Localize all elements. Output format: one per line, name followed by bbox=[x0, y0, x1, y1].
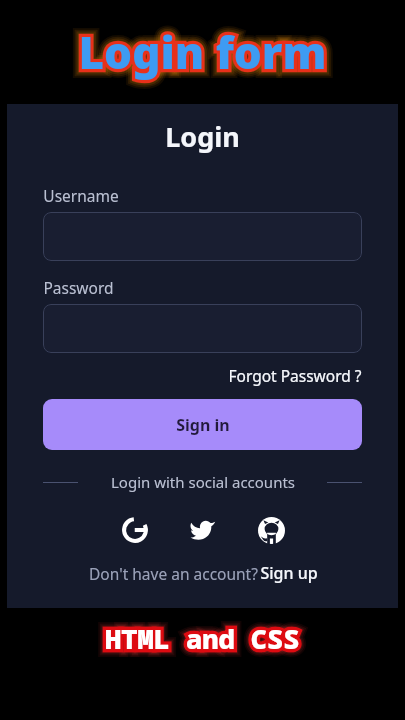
button[interactable] bbox=[43, 304, 362, 353]
staticText: Forgot Password ? bbox=[228, 365, 362, 386]
button[interactable] bbox=[43, 212, 362, 261]
staticText: Password bbox=[43, 277, 114, 298]
button[interactable]: Sign in bbox=[43, 399, 362, 450]
staticText: Sign up bbox=[260, 562, 318, 584]
button[interactable]: Sign in with Twitter bbox=[179, 506, 227, 554]
button[interactable]: Sign up bbox=[260, 562, 318, 584]
staticText: Login with social accounts bbox=[111, 472, 295, 492]
staticText: Don't have an account? bbox=[87, 563, 260, 584]
button[interactable]: Sign in with Google bbox=[111, 506, 159, 554]
staticText: Sign in bbox=[176, 414, 230, 436]
staticText: Login bbox=[165, 118, 240, 155]
button[interactable]: Sign in with GitHub bbox=[247, 506, 295, 554]
button[interactable]: Forgot Password ? bbox=[228, 363, 362, 388]
staticText: Username bbox=[43, 185, 119, 206]
